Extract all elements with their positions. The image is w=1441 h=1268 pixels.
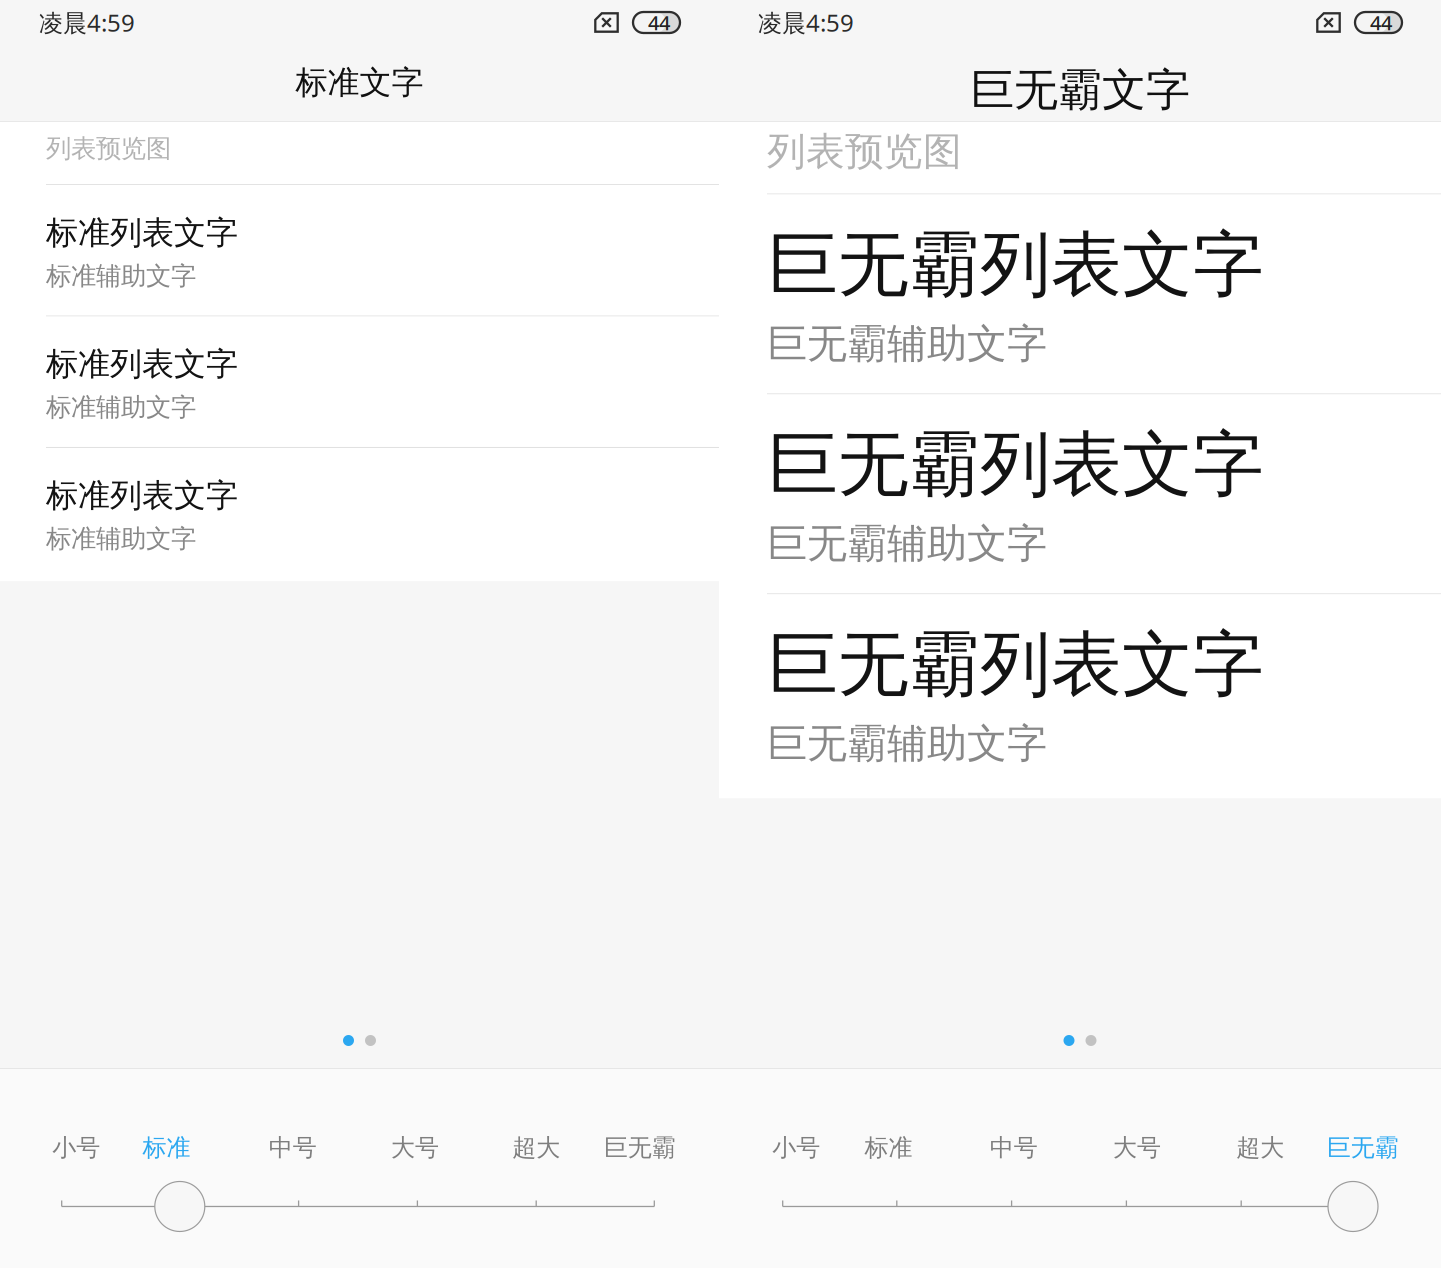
button[interactable]: 大号 (391, 1133, 439, 1162)
button[interactable]: 第 2 页 (365, 1035, 376, 1046)
button[interactable]: 中号 (269, 1133, 317, 1162)
staticText: 巨无霸辅助文字 (767, 319, 1047, 368)
staticText: 中号 (990, 1133, 1038, 1162)
button[interactable]: 标准列表文字 (0, 316, 719, 447)
button[interactable]: 超大 (512, 1133, 560, 1162)
button[interactable]: 无 SIM 卡 (1316, 12, 1341, 33)
staticText: 巨无霸辅助文字 (767, 719, 1047, 768)
button[interactable]: 字体大小滑块 (155, 1181, 205, 1231)
staticText: 大号 (1113, 1133, 1161, 1162)
staticText: 标准列表文字 (46, 213, 238, 252)
staticText: 大号 (391, 1133, 439, 1162)
staticText: 巨无霸 (604, 1133, 676, 1162)
staticText: 中号 (269, 1133, 317, 1162)
staticText: 巨无霸 (1327, 1133, 1399, 1162)
staticText: 44 (1370, 9, 1392, 36)
button[interactable]: 中号 (990, 1133, 1038, 1162)
button[interactable]: 电量 44% (633, 12, 680, 33)
staticText: 标准 (864, 1133, 912, 1162)
button[interactable]: 小号 (772, 1133, 820, 1162)
staticText: 巨无霸列表文字 (767, 621, 1264, 708)
staticText: 巨无霸列表文字 (767, 421, 1264, 508)
staticText: 列表预览图 (46, 133, 171, 164)
button[interactable]: 巨无霸文字 (719, 63, 1441, 117)
staticText: 44 (648, 9, 670, 36)
button[interactable]: 字体大小滑块 (1328, 1181, 1378, 1231)
staticText: 标准辅助文字 (46, 260, 196, 291)
button[interactable]: 电量 44% (1355, 12, 1402, 33)
button[interactable]: 标准 (142, 1133, 190, 1162)
staticText: 小号 (772, 1133, 820, 1162)
button[interactable]: 巨无霸列表文字 (719, 394, 1441, 593)
staticText: 标准文字 (295, 63, 423, 102)
staticText: 巨无霸列表文字 (767, 221, 1264, 308)
staticText: 标准辅助文字 (46, 392, 196, 423)
staticText: 巨无霸文字 (970, 63, 1190, 117)
staticText: 标准列表文字 (46, 476, 238, 515)
staticText: 小号 (52, 1133, 100, 1162)
button[interactable]: 标准列表文字 (0, 448, 719, 581)
button[interactable]: 超大 (1236, 1133, 1284, 1162)
button[interactable]: 第 1 页 (1063, 1035, 1074, 1046)
staticText: 超大 (1236, 1133, 1284, 1162)
staticText: 标准 (142, 1133, 190, 1162)
button[interactable]: 标准列表文字 (0, 185, 719, 315)
staticText: 标准列表文字 (46, 344, 238, 384)
staticText: 超大 (512, 1133, 560, 1162)
button[interactable]: 第 2 页 (1085, 1035, 1096, 1046)
staticText: 凌晨4:59 (758, 7, 854, 38)
button[interactable]: 巨无霸列表文字 (719, 594, 1441, 798)
staticText: 凌晨4:59 (39, 7, 135, 38)
button[interactable]: 第 1 页 (343, 1035, 354, 1046)
button[interactable]: 巨无霸 (1327, 1133, 1399, 1162)
button[interactable]: 巨无霸 (604, 1133, 676, 1162)
button[interactable]: 标准 (864, 1133, 912, 1162)
button[interactable]: 小号 (52, 1133, 100, 1162)
button[interactable]: 标准文字 (0, 63, 719, 102)
staticText: 标准辅助文字 (46, 523, 196, 554)
button[interactable]: 无 SIM 卡 (594, 12, 619, 33)
staticText: 巨无霸辅助文字 (767, 519, 1047, 568)
button[interactable]: 大号 (1113, 1133, 1161, 1162)
staticText: 列表预览图 (767, 128, 962, 175)
button[interactable]: 巨无霸列表文字 (719, 194, 1441, 393)
